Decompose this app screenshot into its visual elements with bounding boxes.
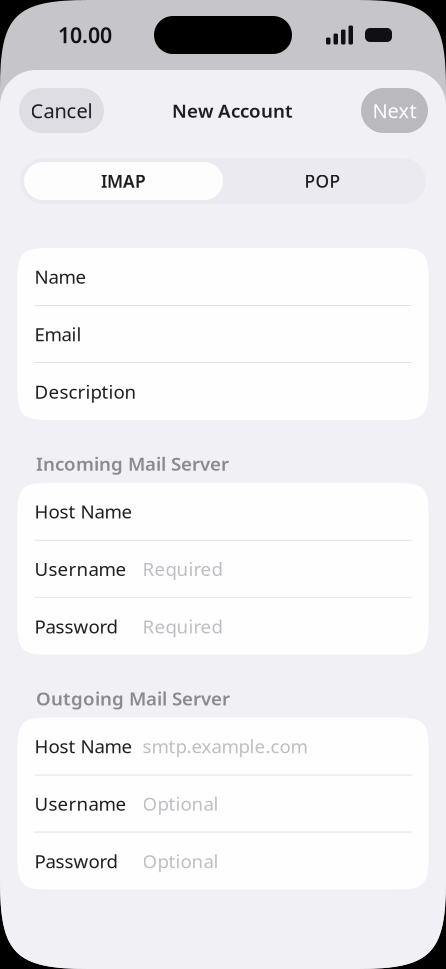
staticText: Incoming Mail Server [36,451,229,476]
button[interactable]: Email [17,306,428,362]
staticText: 10.00 [58,21,112,49]
staticText: smtp.example.com [142,734,307,758]
staticText: Username [34,791,126,816]
staticText: IMAP [101,169,146,192]
staticText: Password [34,849,117,873]
staticText: Optional [142,849,218,873]
staticText: Required [142,614,222,639]
button[interactable]: Next [361,88,428,133]
button[interactable]: Cancel [19,88,104,133]
button[interactable]: Password [17,833,428,890]
button[interactable]: Password [17,598,428,655]
button[interactable]: Username [17,776,428,832]
staticText: Host Name [34,734,132,758]
staticText: Description [34,379,136,404]
button[interactable]: POP [223,162,422,200]
staticText: Username [34,556,126,581]
staticText: Password [34,614,117,639]
staticText: Email [34,322,81,346]
button[interactable]: Name [17,248,428,305]
staticText: New Account [172,98,293,123]
staticText: Next [372,97,416,124]
staticText: Outgoing Mail Server [36,686,230,711]
button[interactable]: Host Name [17,483,428,540]
staticText: Required [142,556,222,581]
staticText: POP [304,169,340,192]
button[interactable]: Host Name [17,718,428,775]
button[interactable]: IMAP [24,162,223,200]
staticText: Cancel [30,97,92,124]
button[interactable]: Description [17,363,428,420]
button[interactable]: Username [17,541,428,597]
staticText: Optional [142,791,218,816]
staticText: Name [34,264,86,289]
staticText: Host Name [34,499,132,524]
